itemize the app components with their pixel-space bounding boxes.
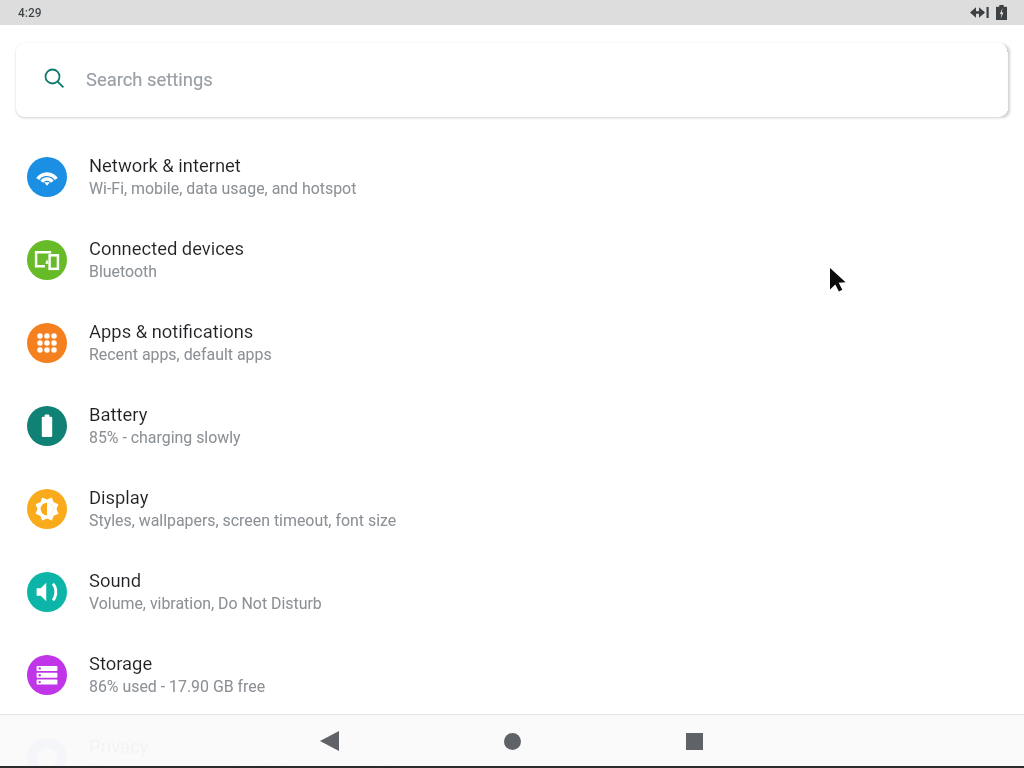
staticText: 4:29 [18,6,42,20]
button[interactable]: Sound [0,550,1024,633]
button[interactable]: Privacy [0,716,1024,768]
staticText: Connected devices [89,238,245,260]
staticText: Search settings [86,69,213,91]
staticText: Styles, wallpapers, screen timeout, font… [89,511,397,530]
other: Battery charging [996,5,1007,20]
button[interactable]: Battery [0,384,1024,467]
button[interactable]: Storage [0,633,1024,716]
staticText: Permissions, account activity, personal … [89,760,399,768]
button[interactable]: Recent apps [670,717,718,765]
staticText: Display [89,487,149,509]
staticText: Storage [89,653,153,675]
staticText: Wi-Fi, mobile, data usage, and hotspot [89,179,357,198]
button[interactable]: Back [305,717,353,765]
other: Ethernet connected [970,7,989,18]
button[interactable]: Network & internet [0,135,1024,218]
button[interactable]: Search settings [16,43,1007,117]
button[interactable]: Display [0,467,1024,550]
staticText: Network & internet [89,155,241,177]
staticText: Battery [89,404,148,426]
staticText: Apps & notifications [89,321,254,343]
button[interactable]: Home [488,717,536,765]
staticText: Sound [89,570,142,592]
staticText: Bluetooth [89,262,158,281]
staticText: Recent apps, default apps [89,345,272,364]
staticText: Volume, vibration, Do Not Disturb [89,594,322,613]
button[interactable]: Connected devices [0,218,1024,301]
staticText: 86% used - 17.90 GB free [89,677,266,696]
staticText: 85% - charging slowly [89,428,241,447]
button[interactable]: Apps & notifications [0,301,1024,384]
